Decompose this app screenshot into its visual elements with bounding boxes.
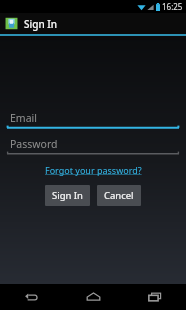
- button[interactable]: Home: [62, 284, 124, 310]
- button[interactable]: Email: [0, 110, 186, 129]
- staticText: Sign In: [52, 189, 83, 202]
- staticText: Email: [10, 111, 37, 125]
- button[interactable]: Sign In: [45, 185, 90, 206]
- staticText: Sign In: [24, 17, 58, 31]
- staticText: 16:25: [162, 1, 183, 12]
- button[interactable]: Sign In: [0, 13, 186, 34]
- button[interactable]: Back: [0, 284, 62, 310]
- button[interactable]: Cancel: [97, 185, 141, 206]
- staticText: Cancel: [104, 189, 134, 202]
- button[interactable]: Forgot your password?: [41, 162, 146, 178]
- button[interactable]: Recent apps: [124, 284, 186, 310]
- button[interactable]: Password: [0, 136, 186, 155]
- staticText: Forgot your password?: [45, 164, 142, 176]
- staticText: Password: [10, 137, 58, 151]
